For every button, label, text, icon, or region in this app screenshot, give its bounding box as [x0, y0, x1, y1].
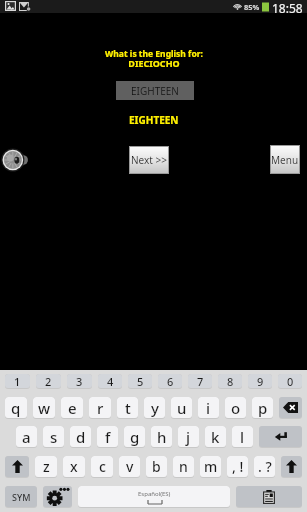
button[interactable]: q: [5, 397, 27, 418]
button[interactable]: x: [63, 456, 85, 477]
button[interactable]: e: [61, 397, 83, 418]
staticText: 2: [45, 374, 52, 388]
staticText: l: [240, 427, 245, 447]
staticText: EIGHTEEN: [129, 113, 179, 127]
button[interactable]: m: [200, 456, 221, 477]
button[interactable]: r: [89, 397, 111, 418]
staticText: n: [179, 457, 188, 476]
staticText: 0: [287, 374, 294, 388]
button[interactable]: y: [144, 397, 165, 418]
staticText: 85%: [244, 2, 260, 12]
button[interactable]: Menu: [271, 146, 299, 173]
button[interactable]: u: [171, 397, 192, 418]
button[interactable]: z: [35, 456, 57, 477]
staticText: h: [157, 427, 167, 447]
staticText: q: [11, 398, 21, 418]
other: Clipboard: [263, 490, 275, 504]
staticText: 1: [14, 374, 21, 388]
other: Shift: [12, 460, 23, 473]
button[interactable]: v: [119, 456, 140, 477]
staticText: s: [50, 427, 58, 447]
button[interactable]: w: [33, 397, 55, 418]
button[interactable]: Shift: [5, 456, 29, 477]
button[interactable]: t: [117, 397, 138, 418]
staticText: EIGHTEEN: [131, 84, 179, 98]
button[interactable]: EIGHTEEN: [116, 81, 194, 100]
staticText: r: [97, 398, 104, 418]
staticText: Menu: [271, 153, 299, 167]
staticText: o: [231, 398, 241, 418]
button[interactable]: c: [91, 456, 113, 477]
staticText: 6: [167, 374, 174, 388]
staticText: p: [258, 398, 268, 418]
staticText: x: [70, 457, 78, 476]
button[interactable]: f: [97, 426, 118, 447]
other: Shift: [286, 460, 297, 473]
button[interactable]: Play pronunciation: [3, 148, 27, 172]
staticText: 7: [197, 374, 204, 388]
staticText: c: [99, 457, 106, 476]
staticText: 5: [137, 374, 144, 388]
staticText: , !: [232, 457, 244, 476]
staticText: w: [38, 398, 51, 418]
button[interactable]: 5: [128, 374, 152, 388]
button[interactable]: Next >>: [130, 147, 168, 173]
button[interactable]: b: [146, 456, 167, 477]
button[interactable]: l: [232, 426, 253, 447]
staticText: 8: [227, 374, 234, 388]
staticText: t: [125, 398, 131, 418]
staticText: u: [177, 398, 187, 418]
button[interactable]: p: [252, 397, 273, 418]
button[interactable]: Enter: [259, 426, 302, 447]
button[interactable]: 2: [36, 374, 61, 388]
button[interactable]: 4: [98, 374, 122, 388]
button[interactable]: SYM: [5, 486, 37, 507]
button[interactable]: Español(ES): [78, 486, 230, 507]
staticText: 3: [76, 374, 83, 388]
button[interactable]: . ?: [254, 456, 275, 477]
staticText: What is the English for:: [105, 48, 203, 60]
button[interactable]: g: [124, 426, 145, 447]
button[interactable]: 8: [218, 374, 242, 388]
staticText: Español(ES): [138, 490, 171, 498]
button[interactable]: 0: [278, 374, 302, 388]
other: Enter: [274, 431, 288, 443]
button[interactable]: Clipboard: [236, 486, 302, 507]
staticText: f: [105, 427, 111, 447]
staticText: 9: [257, 374, 264, 388]
button[interactable]: a: [16, 426, 37, 447]
button[interactable]: j: [178, 426, 199, 447]
button[interactable]: n: [173, 456, 194, 477]
button[interactable]: Shift: [281, 456, 302, 477]
staticText: 18:58: [272, 0, 303, 13]
staticText: d: [76, 427, 86, 447]
staticText: 4: [107, 374, 114, 388]
button[interactable]: s: [43, 426, 64, 447]
staticText: v: [126, 457, 134, 476]
staticText: SYM: [12, 491, 31, 503]
button[interactable]: o: [225, 397, 246, 418]
other: Settings: [47, 488, 68, 505]
button[interactable]: k: [205, 426, 226, 447]
button[interactable]: 6: [158, 374, 182, 388]
button[interactable]: Settings: [43, 486, 72, 507]
button[interactable]: i: [198, 397, 219, 418]
button[interactable]: , !: [227, 456, 248, 477]
button[interactable]: 3: [67, 374, 92, 388]
button[interactable]: h: [151, 426, 172, 447]
button[interactable]: 1: [5, 374, 30, 388]
staticText: DIECIOCHO: [128, 57, 180, 69]
staticText: e: [68, 398, 77, 418]
staticText: m: [204, 457, 218, 476]
staticText: . ?: [258, 457, 272, 476]
staticText: Next >>: [131, 153, 167, 167]
staticText: b: [152, 457, 161, 476]
button[interactable]: 7: [188, 374, 212, 388]
staticText: z: [43, 457, 50, 476]
button[interactable]: d: [70, 426, 91, 447]
staticText: j: [186, 427, 191, 447]
button[interactable]: Backspace: [279, 397, 302, 418]
button[interactable]: 9: [248, 374, 272, 388]
staticText: g: [130, 427, 140, 447]
staticText: k: [211, 427, 220, 447]
